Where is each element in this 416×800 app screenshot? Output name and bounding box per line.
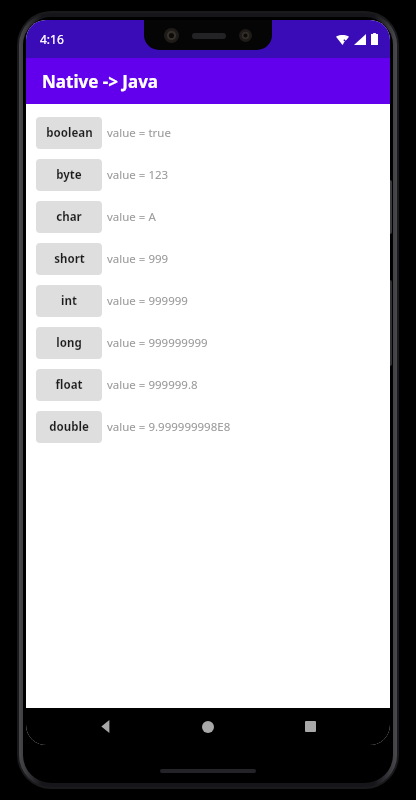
staticText: Native -> Java xyxy=(42,70,159,93)
button[interactable]: long xyxy=(26,322,390,364)
staticText: value = 9.999999998E8 xyxy=(107,419,231,435)
button[interactable]: Recent apps xyxy=(288,708,332,745)
staticText: value = 999999 xyxy=(107,293,188,309)
staticText: value = 999999.8 xyxy=(107,377,198,393)
button[interactable]: short xyxy=(26,238,390,280)
staticText: value = 999 xyxy=(107,251,169,267)
button[interactable]: byte xyxy=(26,154,390,196)
staticText: byte xyxy=(56,167,82,183)
staticText: value = true xyxy=(107,125,171,141)
button[interactable]: Home xyxy=(186,708,230,745)
staticText: double xyxy=(49,419,89,435)
staticText: boolean xyxy=(46,125,93,141)
staticText: short xyxy=(54,251,85,267)
staticText: value = 999999999 xyxy=(107,335,208,351)
staticText: int xyxy=(61,293,77,309)
button[interactable]: char xyxy=(26,196,390,238)
button[interactable]: Back xyxy=(84,708,128,745)
staticText: 4:16 xyxy=(40,31,64,47)
button[interactable]: int xyxy=(26,280,390,322)
button[interactable]: boolean xyxy=(26,112,390,154)
staticText: float xyxy=(55,377,83,393)
staticText: value = A xyxy=(107,209,156,225)
button[interactable]: double xyxy=(26,406,390,448)
staticText: long xyxy=(56,335,82,351)
staticText: char xyxy=(56,209,82,225)
button[interactable]: float xyxy=(26,364,390,406)
staticText: value = 123 xyxy=(107,167,169,183)
